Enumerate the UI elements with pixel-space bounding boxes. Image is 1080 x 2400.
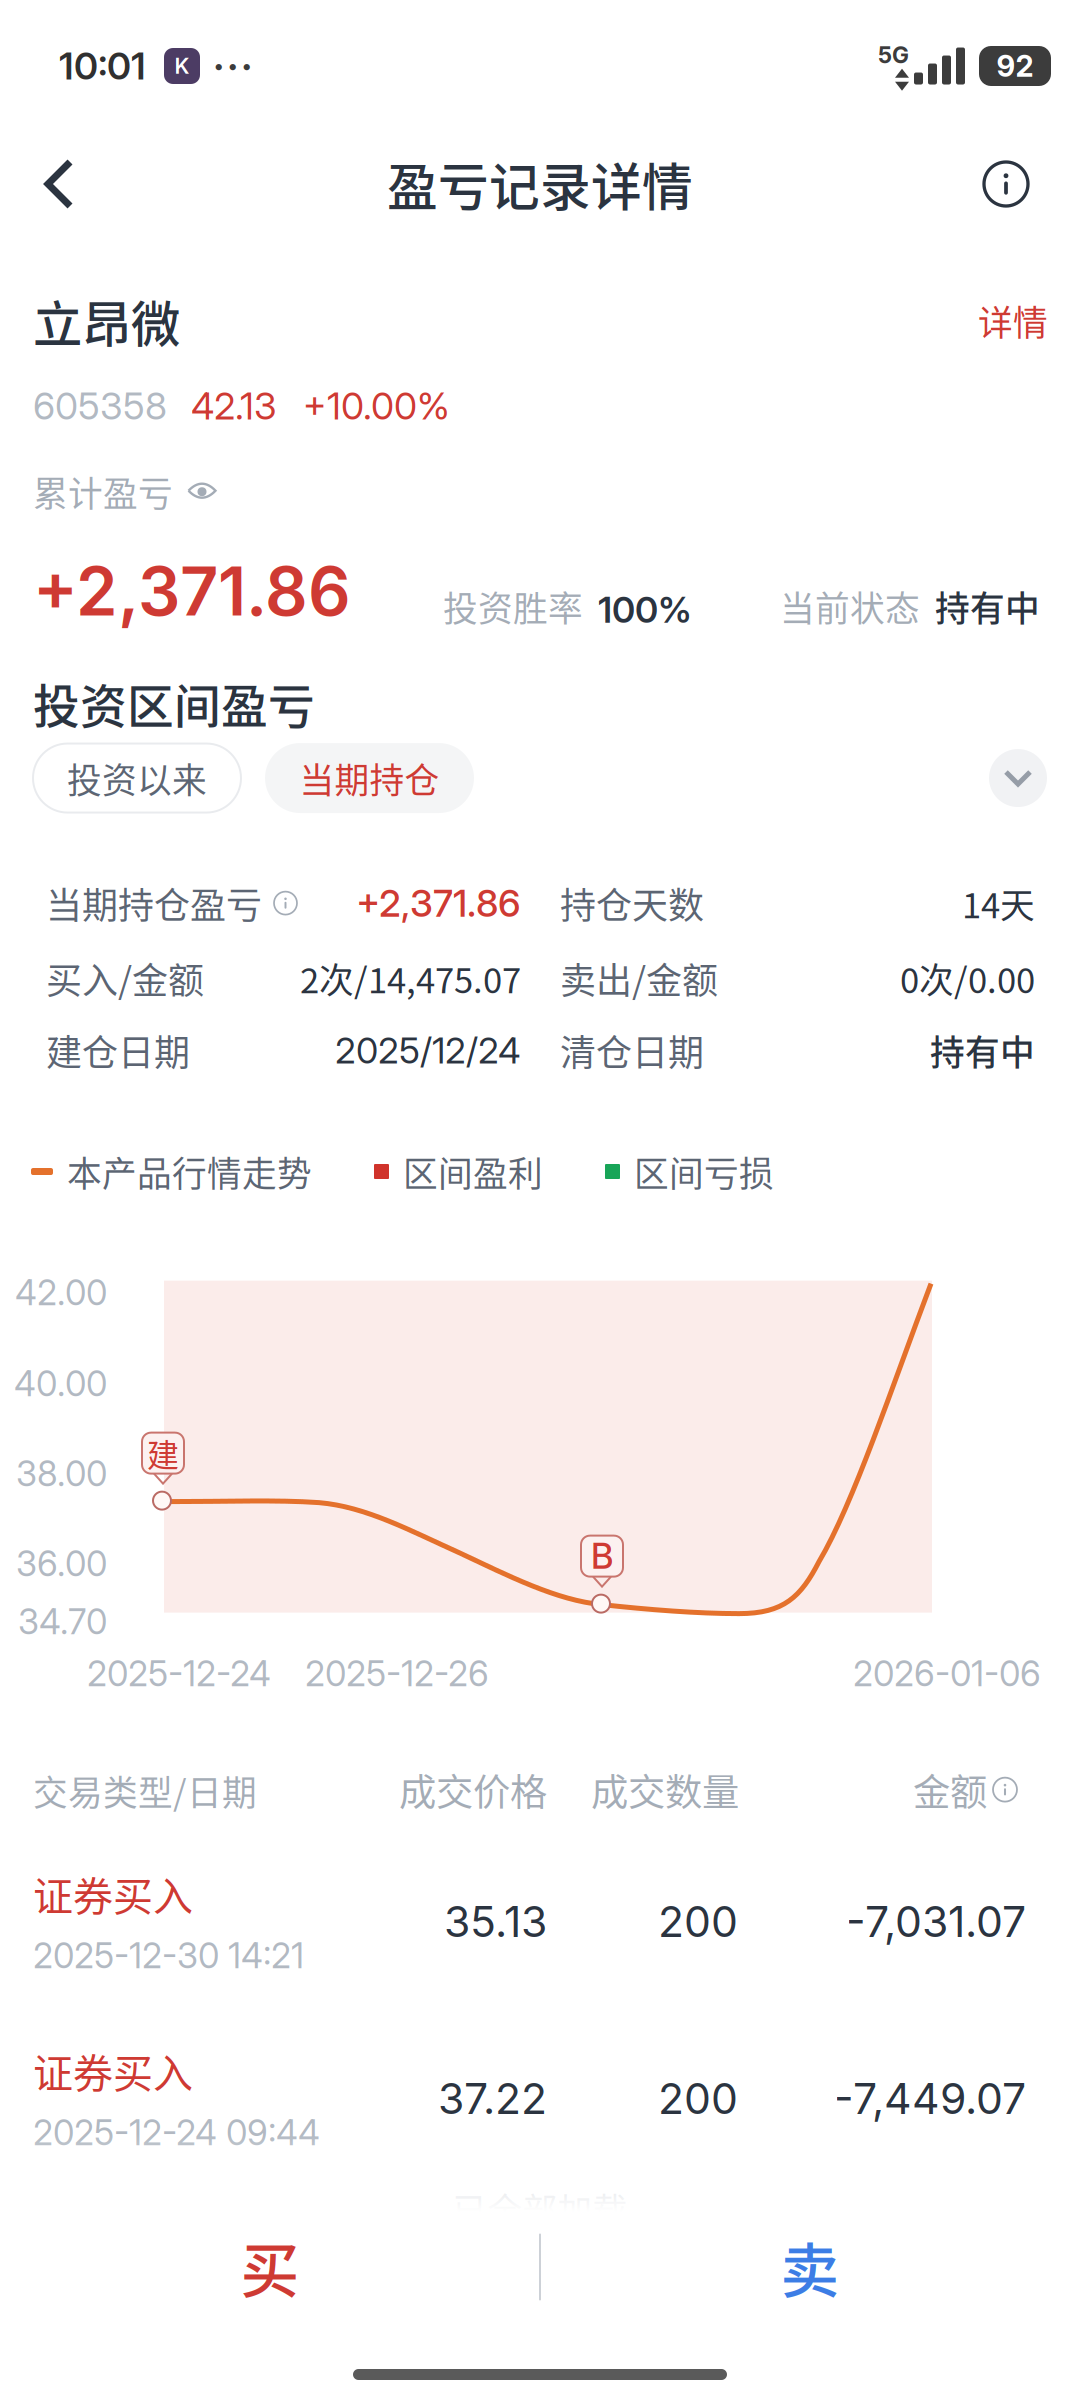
staticText: +2,371.86	[356, 880, 521, 926]
staticText: 2025-12-30 14:21	[33, 1935, 304, 1976]
staticText: K	[174, 53, 189, 79]
staticText: 2025-12-24 09:44	[33, 2112, 320, 2153]
staticText: 卖	[780, 2224, 839, 2309]
staticText: +10.00%	[303, 383, 450, 429]
staticText: 37.22	[438, 2073, 547, 2124]
staticText: 200	[658, 2073, 738, 2124]
staticText: 2025-12-24	[87, 1653, 271, 1694]
button[interactable]: 买	[0, 2212, 540, 2322]
staticText: 200	[658, 1896, 738, 1947]
staticText: 清仓日期	[560, 1024, 704, 1076]
staticText: 5G	[878, 41, 909, 69]
staticText: 证券买入	[33, 2042, 193, 2100]
staticText: 交易类型/日期	[33, 1766, 257, 1816]
staticText: 持仓天数	[560, 877, 704, 929]
staticText: 当期持仓盈亏	[46, 877, 262, 929]
staticText: 投资区间盈亏	[33, 669, 315, 737]
staticText: 成交价格	[399, 1763, 547, 1817]
staticText: 当前状态	[780, 581, 920, 631]
staticText: 40.00	[14, 1363, 107, 1404]
staticText: • • •	[214, 54, 251, 78]
staticText: +2,371.86	[33, 551, 351, 631]
staticText: 投资以来	[67, 753, 207, 803]
staticText: 605358	[33, 383, 167, 429]
staticText: 买	[240, 2224, 299, 2309]
staticText: 35.13	[444, 1896, 547, 1947]
staticText: 2次/14,475.07	[300, 953, 521, 1003]
staticText: 10:01	[59, 43, 146, 89]
staticText: 卖出/金额	[560, 952, 718, 1004]
staticText: 盈亏记录详情	[387, 147, 693, 221]
staticText: 34.70	[18, 1601, 107, 1642]
staticText: 投资胜率	[443, 581, 583, 631]
button[interactable]: More information	[962, 138, 1050, 230]
button[interactable]: 投资以来	[33, 743, 241, 812]
button[interactable]: 详情	[978, 296, 1048, 346]
staticText: 立昂微	[33, 285, 180, 356]
staticText: -7,449.07	[834, 2073, 1026, 2124]
staticText: 成交数量	[591, 1763, 739, 1817]
staticText: 36.00	[16, 1543, 107, 1584]
staticText: 0次/0.00	[900, 953, 1035, 1003]
staticText: 100%	[598, 588, 692, 631]
staticText: 14天	[962, 878, 1035, 928]
staticText: 2025/12/24	[335, 1029, 521, 1072]
button[interactable]: Expand section	[989, 749, 1047, 807]
staticText: 建	[147, 1430, 179, 1476]
staticText: 区间盈利	[403, 1146, 543, 1197]
staticText: 2025-12-26	[305, 1653, 489, 1694]
staticText: 建仓日期	[46, 1024, 190, 1076]
staticText: 持有中	[935, 581, 1040, 631]
staticText: 2026-01-06	[853, 1653, 1041, 1694]
staticText: 42.00	[15, 1272, 107, 1313]
staticText: 详情	[978, 296, 1048, 346]
staticText: 证券买入	[33, 1865, 193, 1923]
staticText: 38.00	[16, 1453, 107, 1494]
staticText: 区间亏损	[634, 1146, 774, 1197]
button[interactable]: Back	[15, 138, 103, 230]
staticText: 本产品行情走势	[67, 1146, 312, 1197]
staticText: 累计盈亏	[33, 467, 173, 517]
staticText: 持有中	[930, 1025, 1035, 1075]
button[interactable]: 当期持仓	[265, 743, 474, 813]
staticText: 买入/金额	[46, 952, 204, 1004]
staticText: 92	[996, 48, 1033, 84]
staticText: B	[591, 1535, 613, 1577]
staticText: 金额	[913, 1763, 987, 1817]
staticText: 当期持仓	[299, 753, 439, 803]
staticText: 42.13	[191, 383, 277, 429]
staticText: -7,031.07	[846, 1896, 1026, 1947]
button[interactable]: 卖	[540, 2212, 1080, 2322]
